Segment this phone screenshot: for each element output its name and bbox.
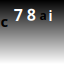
staticText: i bbox=[49, 7, 53, 25]
staticText: 7 bbox=[14, 4, 23, 25]
staticText: 8 bbox=[27, 4, 36, 25]
staticText: a bbox=[39, 7, 46, 23]
staticText: c bbox=[0, 12, 8, 31]
